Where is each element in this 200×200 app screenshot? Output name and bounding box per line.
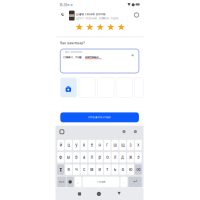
staticText: 15:35 (60, 3, 68, 7)
staticText: ш (113, 143, 116, 147)
staticText: качественный (85, 56, 98, 59)
staticText: . (123, 179, 124, 184)
staticText: Шарф синий Bronks (76, 13, 105, 16)
staticText: р (98, 155, 100, 160)
staticText: с (83, 167, 85, 172)
staticText: а (83, 155, 85, 160)
staticText: д (121, 155, 124, 160)
staticText: к (83, 143, 85, 147)
staticText: Отправить отзыв (88, 116, 111, 119)
staticText: й (60, 143, 62, 147)
staticText: ц (67, 143, 69, 147)
staticText: ю (129, 167, 132, 172)
staticText: ↵ (133, 179, 137, 184)
staticText: ь (114, 167, 116, 172)
staticText: Как вам товар? (60, 41, 85, 45)
staticText: ?123 (58, 180, 64, 183)
staticText: ф (59, 155, 62, 160)
staticText: Русский (97, 180, 105, 183)
staticText: з (129, 143, 131, 147)
staticText: ч (75, 167, 77, 172)
staticText: и (98, 167, 100, 172)
staticText: Цвет: черный, размер: один (76, 17, 119, 20)
staticText: л (114, 155, 116, 160)
staticText: о (106, 155, 108, 160)
staticText: ж (129, 155, 132, 160)
staticText: х (137, 143, 139, 147)
staticText: т (106, 167, 108, 172)
staticText: м (90, 167, 93, 172)
staticText: щ (121, 143, 124, 147)
staticText: ы (67, 155, 70, 160)
staticText: э (137, 155, 139, 160)
staticText: Ваше впечатление (65, 51, 82, 54)
staticText: я (67, 167, 69, 172)
staticText: в (75, 155, 77, 160)
button[interactable]: Отправить отзыв (0, 0, 200, 200)
staticText: б (122, 167, 124, 172)
staticText: ⌫ (136, 167, 141, 172)
staticText: е (91, 143, 93, 147)
staticText: Спасибо, товар (63, 56, 83, 59)
staticText: п (91, 155, 93, 160)
staticText: у (75, 143, 77, 147)
staticText: , (78, 179, 79, 184)
staticText: н (98, 143, 100, 147)
staticText: г (106, 143, 108, 147)
